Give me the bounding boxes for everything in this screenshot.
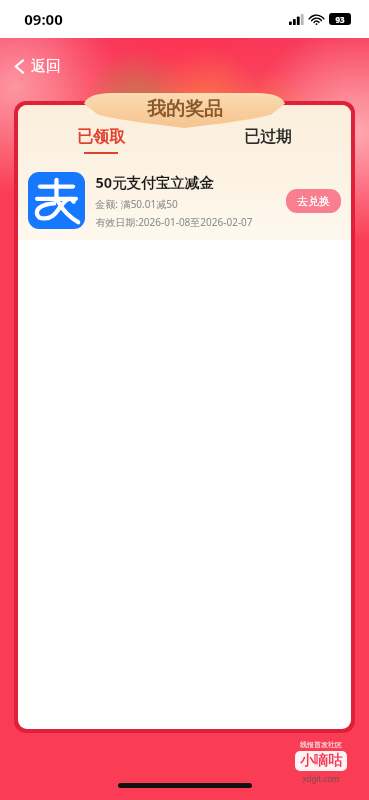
staticText: 已过期	[244, 127, 292, 147]
button[interactable]: 去兑换	[286, 189, 341, 213]
staticText: 线报首发社区	[300, 740, 342, 749]
staticText: 09:00	[24, 9, 63, 29]
staticText: 返回	[31, 57, 61, 76]
staticText: 金额: 满50.01减50	[95, 197, 178, 211]
button[interactable]: 50元支付宝立减金	[18, 168, 351, 233]
staticText: 93	[335, 14, 345, 25]
staticText: 50元支付宝立减金	[95, 172, 214, 192]
staticText: 小嘀咕	[300, 752, 342, 770]
button[interactable]: 返回	[8, 54, 67, 79]
staticText: 有效日期:2026-01-08至2026-02-07	[95, 215, 253, 229]
staticText: 去兑换	[297, 194, 330, 208]
button[interactable]: 已领取	[18, 125, 184, 156]
staticText: 已领取	[77, 127, 125, 147]
staticText: xdglt.com	[302, 773, 340, 784]
staticText: 我的奖品	[147, 97, 223, 121]
button[interactable]: 已过期	[184, 125, 351, 156]
